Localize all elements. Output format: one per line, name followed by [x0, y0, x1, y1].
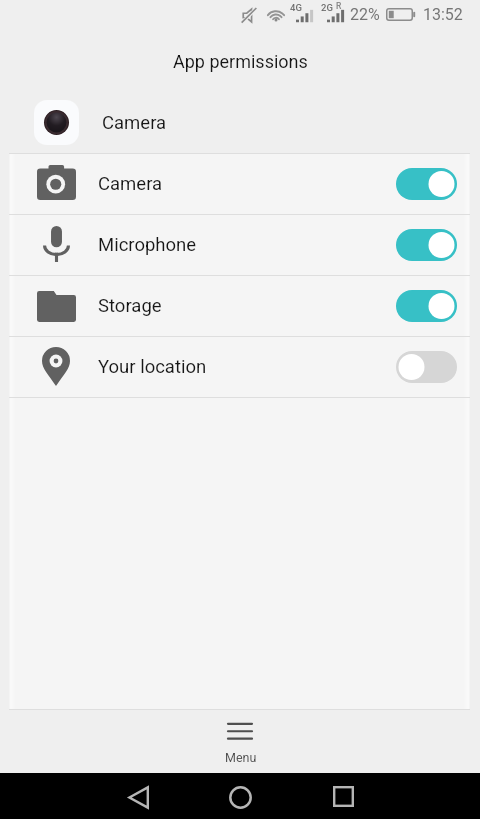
button[interactable]: Back: [86, 773, 190, 819]
staticText: 2G: [321, 2, 333, 13]
staticText: Camera: [98, 173, 163, 195]
button[interactable]: Permission off: [396, 351, 457, 383]
staticText: 13:52: [423, 5, 463, 24]
staticText: Menu: [225, 750, 257, 765]
button[interactable]: Camera: [0, 92, 480, 153]
staticText: Microphone: [98, 234, 197, 256]
staticText: App permissions: [173, 51, 308, 72]
button[interactable]: Permission on: [396, 290, 457, 322]
staticText: Storage: [98, 295, 162, 317]
button[interactable]: Camera: [0, 154, 480, 214]
staticText: 4G: [290, 2, 302, 13]
button[interactable]: Storage: [0, 276, 480, 336]
staticText: 22%: [350, 5, 380, 24]
staticText: Camera: [102, 112, 167, 134]
button[interactable]: Microphone: [0, 215, 480, 275]
staticText: R: [336, 1, 342, 11]
staticText: Your location: [98, 356, 207, 378]
button[interactable]: Recents: [291, 773, 395, 819]
button[interactable]: Home: [188, 773, 292, 819]
button[interactable]: Menu: [0, 710, 480, 773]
button[interactable]: Permission on: [396, 168, 457, 200]
button[interactable]: Your location: [0, 337, 480, 397]
button[interactable]: Permission on: [396, 229, 457, 261]
